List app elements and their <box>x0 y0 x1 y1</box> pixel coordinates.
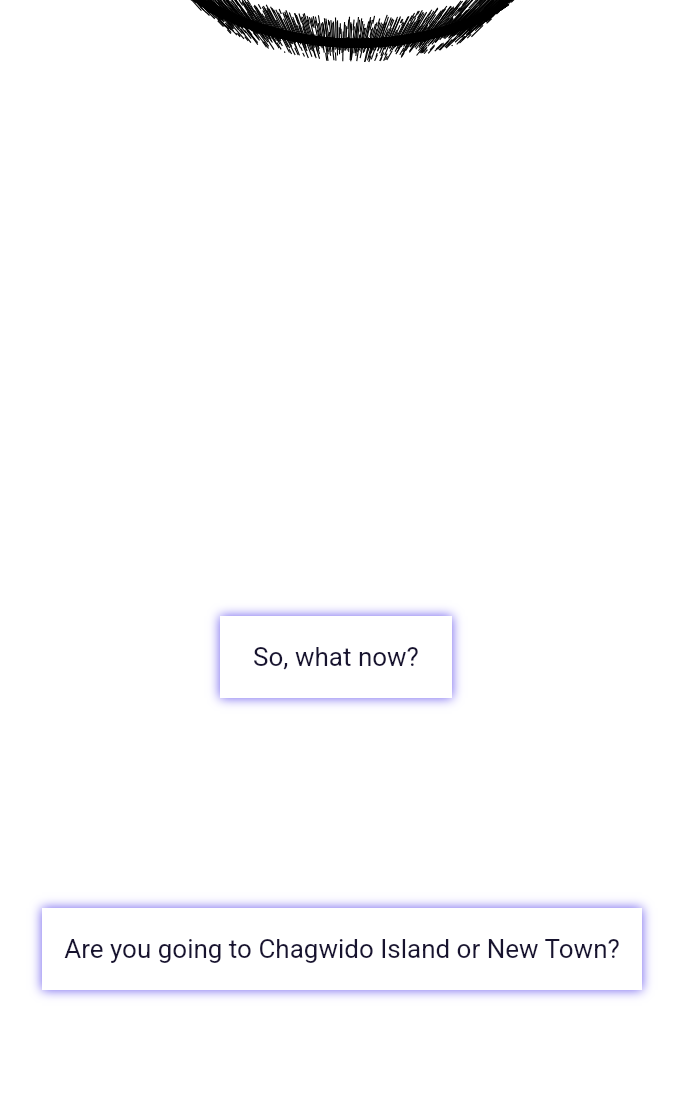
staticText: So, what now? <box>253 642 419 672</box>
staticText: Are you going to Chagwido Island or New … <box>64 934 620 964</box>
button[interactable]: Are you going to Chagwido Island or New … <box>42 908 642 990</box>
button[interactable]: So, what now? <box>220 616 452 698</box>
